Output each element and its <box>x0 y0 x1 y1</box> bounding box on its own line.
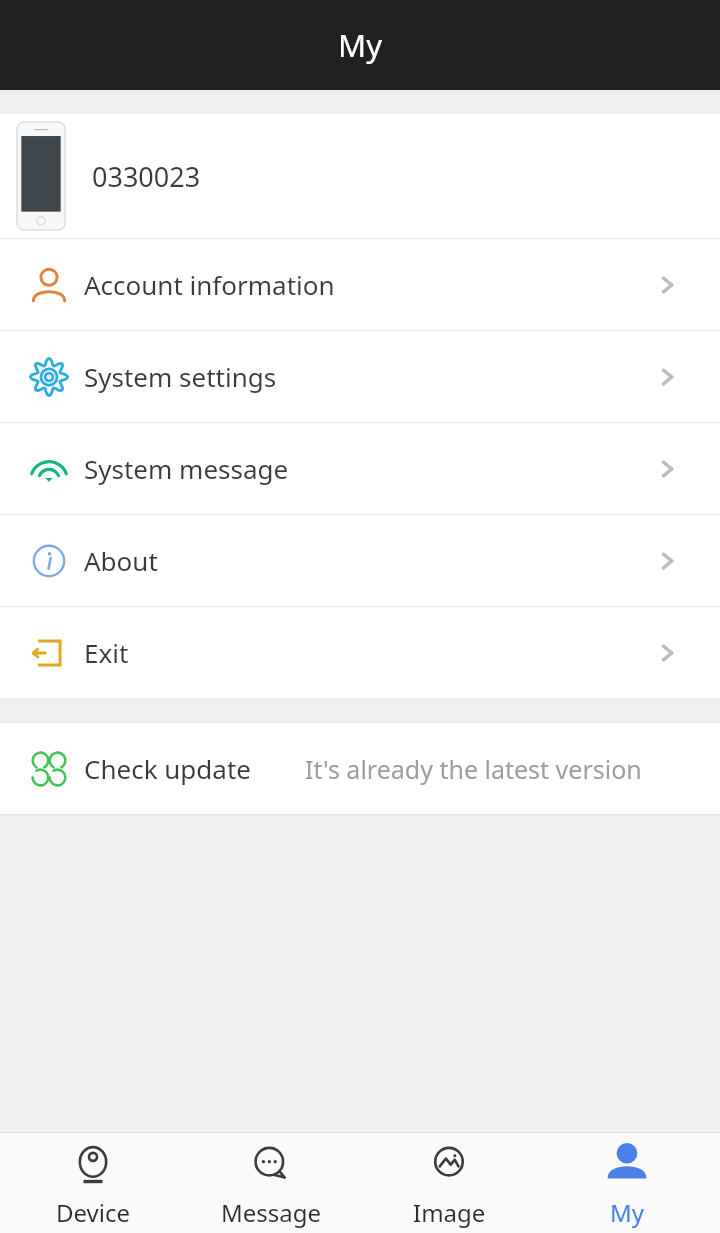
staticText: Device <box>56 1196 131 1229</box>
button[interactable]: Device <box>8 1133 178 1233</box>
button[interactable]: System message <box>0 423 720 514</box>
button[interactable]: About <box>0 515 720 606</box>
staticText: Message <box>221 1196 322 1229</box>
staticText: My <box>610 1196 645 1229</box>
staticText: System message <box>84 451 289 486</box>
staticText: Exit <box>84 635 129 670</box>
staticText: About <box>84 543 158 578</box>
staticText: Check update <box>84 751 251 786</box>
button[interactable]: Account information <box>0 239 720 330</box>
staticText: My <box>338 24 382 66</box>
button[interactable]: Message <box>186 1133 356 1233</box>
staticText: Image <box>413 1196 486 1229</box>
staticText: Account information <box>84 267 335 302</box>
staticText: 0330023 <box>92 158 201 195</box>
staticText: System settings <box>84 359 277 394</box>
button[interactable]: System settings <box>0 331 720 422</box>
staticText: It's already the latest version <box>305 752 642 786</box>
button[interactable]: My <box>542 1133 712 1233</box>
button[interactable]: 0330023 <box>0 114 720 238</box>
button[interactable]: Exit <box>0 607 720 698</box>
button[interactable]: Image <box>364 1133 534 1233</box>
button[interactable]: Check update <box>0 723 720 814</box>
